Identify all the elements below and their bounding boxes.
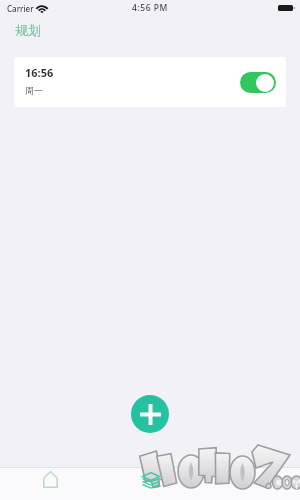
staticText: 周一 (25, 85, 43, 96)
button[interactable]: 16:56 (14, 57, 286, 107)
staticText: 4:56 PM (132, 2, 168, 14)
staticText: 规划 (15, 22, 41, 38)
button[interactable]: Home (0, 468, 100, 500)
staticText: Carrier (7, 3, 34, 14)
staticText: 16:56 (25, 65, 54, 80)
button[interactable]: Toggle alarm (240, 72, 276, 93)
button[interactable]: Add alarm (131, 395, 169, 433)
